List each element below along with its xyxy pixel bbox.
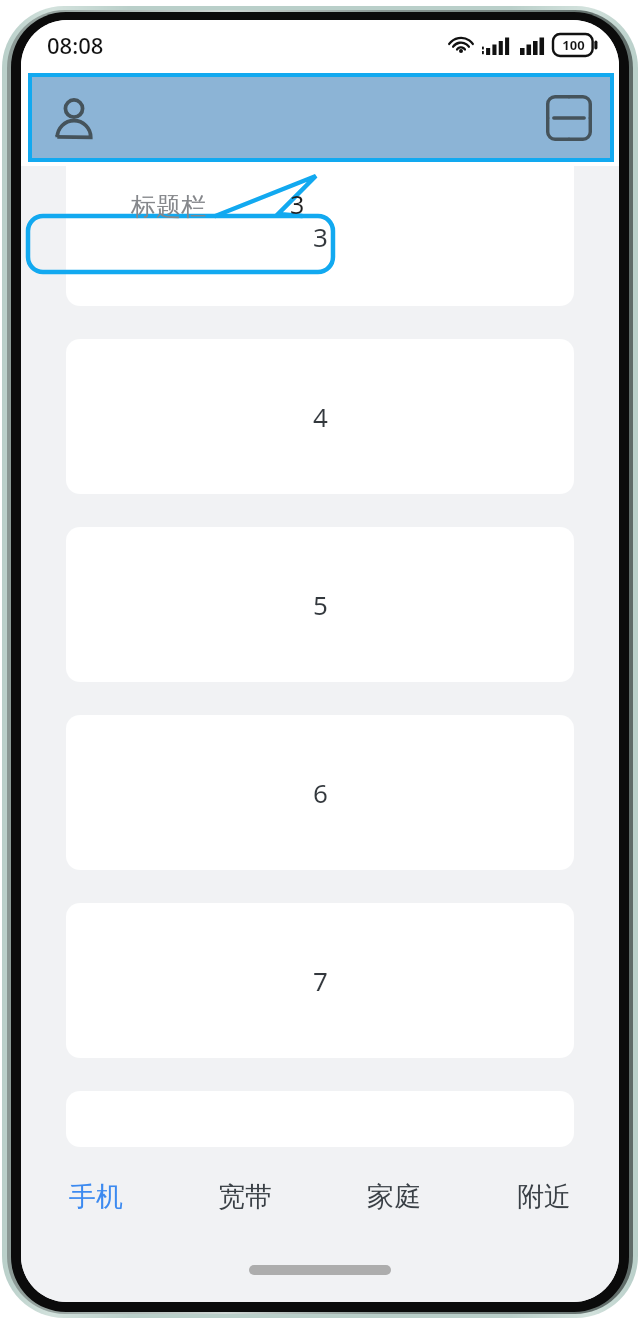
button[interactable]: 手机 bbox=[21, 1147, 170, 1247]
staticText: 100 bbox=[562, 36, 585, 54]
staticText: 4 bbox=[313, 399, 328, 434]
staticText: 附近 bbox=[517, 1180, 571, 1214]
button[interactable]: 5 bbox=[66, 527, 574, 682]
button[interactable]: 宽带 bbox=[170, 1147, 319, 1247]
button[interactable]: 3 bbox=[66, 166, 574, 306]
button[interactable]: Profile bbox=[46, 90, 102, 146]
staticText: 家庭 bbox=[367, 1180, 421, 1214]
staticText: 3 bbox=[290, 187, 305, 221]
staticText: 5 bbox=[313, 587, 328, 622]
button[interactable]: Scan bbox=[540, 89, 598, 147]
staticText: 7 bbox=[313, 963, 328, 998]
button[interactable]: 家庭 bbox=[319, 1147, 469, 1247]
staticText: 手机 bbox=[69, 1180, 123, 1214]
staticText: 宽带 bbox=[218, 1180, 272, 1214]
button[interactable]: 6 bbox=[66, 715, 574, 870]
button[interactable]: 4 bbox=[66, 339, 574, 494]
button[interactable]: 附近 bbox=[469, 1147, 619, 1247]
staticText: 3 bbox=[313, 219, 328, 254]
staticText: 6 bbox=[313, 775, 328, 810]
button[interactable]: 7 bbox=[66, 903, 574, 1058]
staticText: 标题栏 bbox=[131, 191, 206, 222]
staticText: 08:08 bbox=[47, 30, 104, 60]
